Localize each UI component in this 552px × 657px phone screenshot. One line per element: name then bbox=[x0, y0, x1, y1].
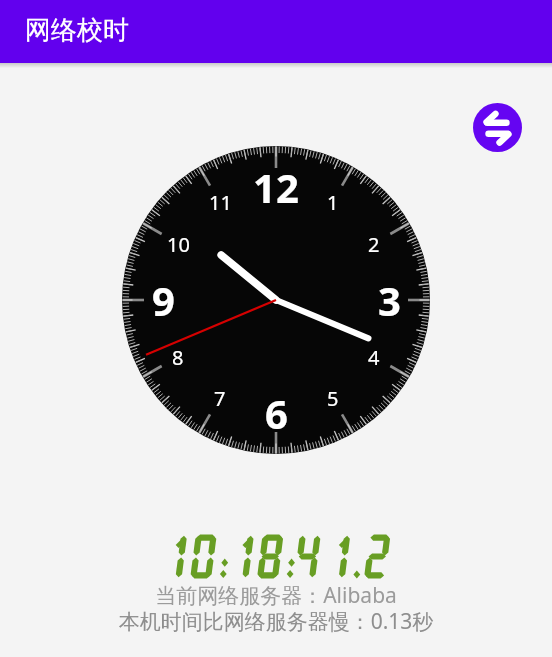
staticText: 1 bbox=[327, 189, 339, 216]
staticText: 8 bbox=[172, 344, 184, 371]
staticText: 网络校时 bbox=[25, 14, 129, 47]
staticText: 11 bbox=[209, 189, 232, 216]
staticText: 9 bbox=[152, 273, 175, 327]
staticText: 5 bbox=[327, 385, 339, 412]
button[interactable] bbox=[473, 103, 522, 152]
staticText: 本机时间比网络服务器慢：0.13秒 bbox=[0, 607, 552, 636]
staticText: 7 bbox=[214, 385, 226, 412]
staticText: 10 bbox=[167, 231, 190, 258]
staticText: 2 bbox=[368, 231, 380, 258]
staticText: 4 bbox=[368, 344, 380, 371]
staticText: 3 bbox=[378, 273, 401, 327]
staticText: 6 bbox=[265, 386, 288, 440]
staticText: 当前网络服务器：Alibaba bbox=[0, 581, 552, 610]
staticText: 12 bbox=[253, 160, 299, 214]
